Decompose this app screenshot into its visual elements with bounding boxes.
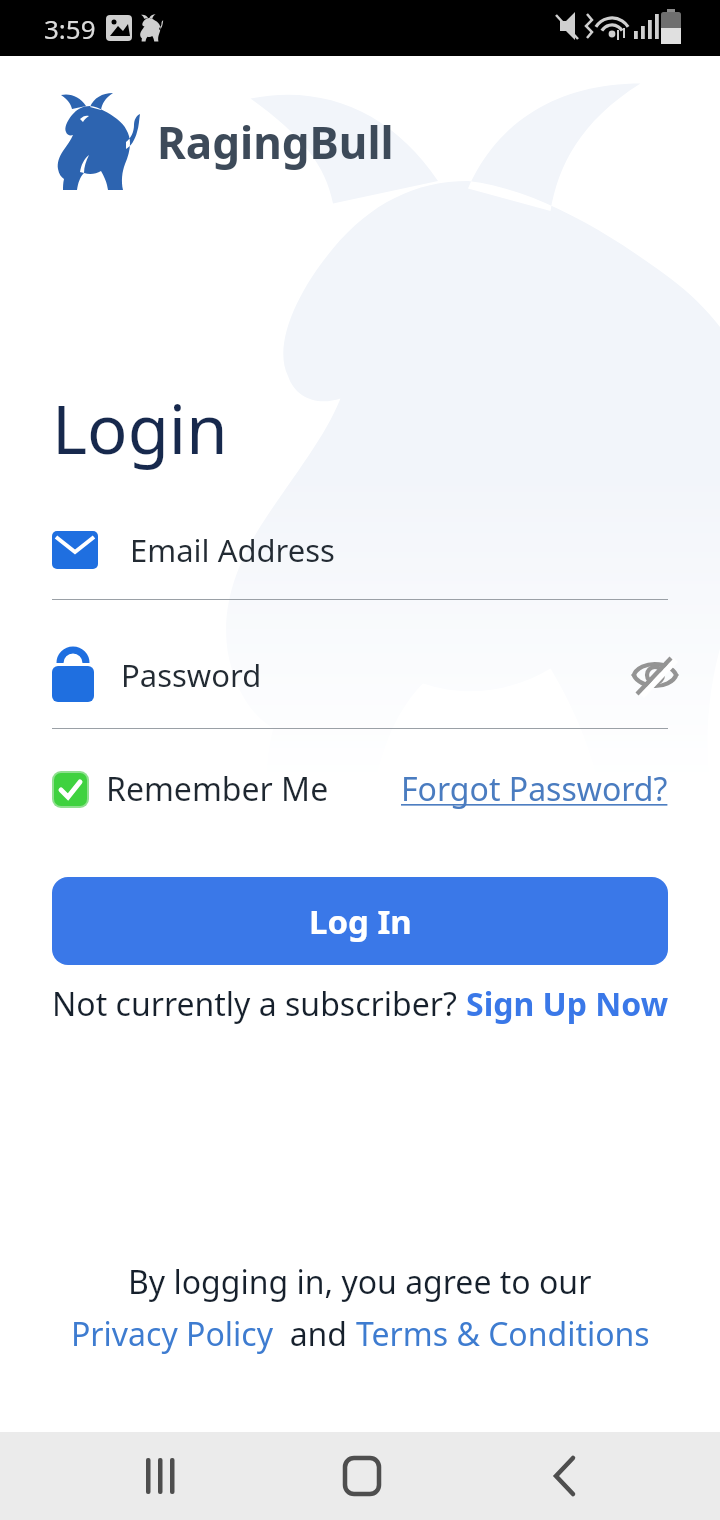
staticText: RagingBull (157, 112, 394, 172)
button[interactable]: Sign Up Now (466, 982, 669, 1026)
staticText: 3:59 (44, 11, 96, 46)
button[interactable]: Privacy Policy (71, 1312, 273, 1356)
button[interactable] (0, 1432, 240, 1520)
button[interactable]: Email Address (52, 529, 668, 571)
button[interactable]: Forgot Password? (401, 767, 668, 811)
staticText: Not currently a subscriber? (52, 982, 466, 1026)
button[interactable]: Log In (52, 877, 668, 965)
staticText: and (273, 1312, 356, 1356)
button[interactable] (240, 1432, 480, 1520)
button[interactable] (480, 1432, 720, 1520)
staticText: By logging in, you agree to our (128, 1260, 592, 1304)
button[interactable]: Remember Me (52, 767, 329, 811)
staticText: Email Address (130, 529, 335, 571)
button[interactable]: Password (52, 648, 678, 702)
button[interactable] (632, 655, 678, 695)
staticText: Log In (309, 899, 412, 944)
staticText: Remember Me (106, 767, 329, 811)
staticText: Login (52, 382, 228, 473)
staticText: Password (121, 654, 262, 696)
button[interactable]: Terms & Conditions (356, 1312, 650, 1356)
